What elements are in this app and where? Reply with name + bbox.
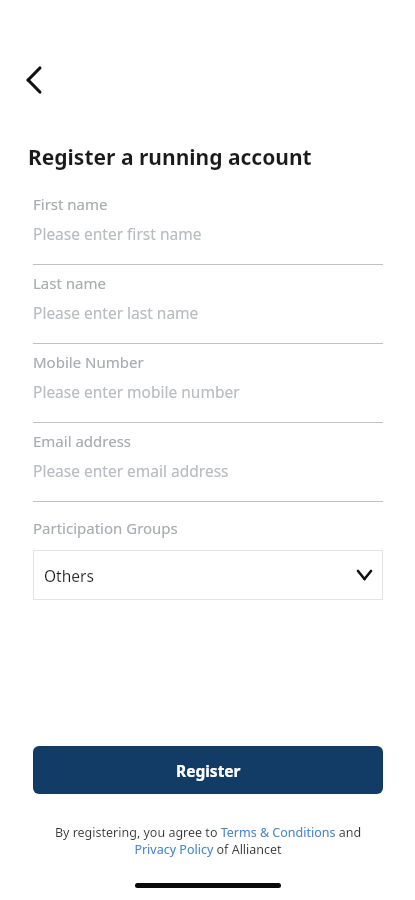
staticText: Please enter first name <box>33 223 202 244</box>
button[interactable]: Register <box>33 746 383 794</box>
staticText: Participation Groups <box>33 518 178 538</box>
staticText: Please enter mobile number <box>33 381 240 402</box>
staticText: Please enter last name <box>33 302 199 323</box>
button[interactable]: Back <box>14 60 54 100</box>
staticText: Email address <box>33 431 132 451</box>
staticText: First name <box>33 194 108 214</box>
button[interactable]: Last name <box>33 265 383 344</box>
staticText: Register <box>176 760 241 781</box>
staticText: Last name <box>33 273 106 293</box>
staticText: Register a running account <box>28 143 312 172</box>
button[interactable]: Others <box>33 550 383 600</box>
button[interactable]: Email address <box>33 423 383 502</box>
staticText: Please enter email address <box>33 460 229 481</box>
button[interactable]: Mobile Number <box>33 344 383 423</box>
staticText: Others <box>44 565 94 586</box>
staticText: By registering, you agree to Terms & Con… <box>33 824 383 858</box>
staticText: Mobile Number <box>33 352 144 372</box>
button[interactable]: First name <box>33 186 383 265</box>
